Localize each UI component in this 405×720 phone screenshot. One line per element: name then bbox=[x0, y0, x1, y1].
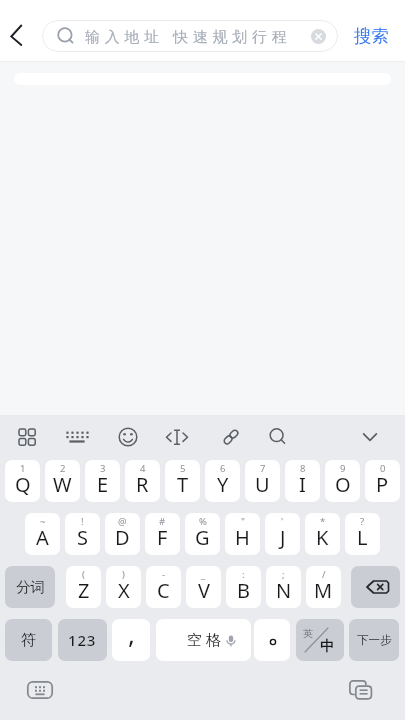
staticText: 5 bbox=[180, 462, 186, 475]
button[interactable]: " bbox=[225, 513, 260, 555]
staticText: Y bbox=[217, 471, 229, 498]
staticText: ; bbox=[282, 568, 285, 581]
button[interactable]: 4 bbox=[125, 460, 160, 502]
staticText: ) bbox=[122, 568, 125, 581]
button[interactable]: ? bbox=[345, 513, 380, 555]
button[interactable]: 分词 bbox=[5, 566, 55, 608]
staticText: G bbox=[195, 524, 210, 551]
button[interactable] bbox=[7, 417, 47, 457]
button[interactable]: , bbox=[112, 619, 150, 661]
button[interactable] bbox=[306, 24, 330, 48]
button[interactable] bbox=[347, 678, 375, 702]
button[interactable]: ( bbox=[66, 566, 101, 608]
button[interactable]: ! bbox=[65, 513, 100, 555]
staticText: 中 bbox=[320, 638, 334, 656]
staticText: K bbox=[316, 524, 329, 551]
staticText: S bbox=[77, 524, 88, 551]
staticText: A bbox=[36, 524, 49, 551]
staticText: X bbox=[118, 577, 130, 604]
staticText: - bbox=[162, 568, 166, 581]
staticText: C bbox=[157, 577, 170, 604]
button[interactable]: 英 bbox=[296, 619, 344, 661]
staticText: 空格 bbox=[185, 631, 223, 650]
button[interactable] bbox=[57, 417, 97, 457]
staticText: ' bbox=[281, 515, 284, 528]
button[interactable]: 输入地址 快速规划行程 bbox=[42, 20, 338, 52]
staticText: 8 bbox=[300, 462, 306, 475]
staticText: Q bbox=[15, 471, 31, 498]
staticText: O bbox=[335, 471, 351, 498]
staticText: / bbox=[322, 568, 326, 581]
staticText: @ bbox=[118, 515, 127, 528]
staticText: 7 bbox=[260, 462, 266, 475]
button[interactable]: ) bbox=[106, 566, 141, 608]
staticText: 下一步 bbox=[357, 633, 392, 647]
button[interactable]: 3 bbox=[85, 460, 120, 502]
button[interactable] bbox=[108, 417, 148, 457]
button[interactable]: _ bbox=[186, 566, 221, 608]
button[interactable]: ' bbox=[265, 513, 300, 555]
button[interactable]: ~ bbox=[25, 513, 60, 555]
button[interactable]: 123 bbox=[58, 619, 107, 661]
button[interactable]: 1 bbox=[5, 460, 40, 502]
button[interactable]: 空格 bbox=[156, 619, 251, 661]
button[interactable] bbox=[258, 417, 298, 457]
staticText: V bbox=[198, 577, 210, 604]
button[interactable] bbox=[26, 678, 54, 702]
staticText: _ bbox=[201, 568, 206, 581]
staticText: ! bbox=[81, 515, 84, 528]
button[interactable]: 搜索 bbox=[338, 10, 405, 61]
staticText: 搜索 bbox=[354, 25, 389, 47]
staticText: L bbox=[357, 524, 368, 551]
staticText: I bbox=[299, 471, 306, 498]
staticText: 4 bbox=[140, 462, 146, 475]
button[interactable]: 2 bbox=[45, 460, 80, 502]
button[interactable]: 5 bbox=[165, 460, 200, 502]
staticText: ( bbox=[82, 568, 85, 581]
staticText: 9 bbox=[340, 462, 346, 475]
button[interactable] bbox=[0, 10, 42, 61]
staticText: % bbox=[199, 515, 207, 528]
button[interactable]: 7 bbox=[245, 460, 280, 502]
staticText: " bbox=[241, 515, 245, 528]
staticText: N bbox=[276, 577, 292, 604]
button[interactable]: % bbox=[185, 513, 220, 555]
button[interactable]: 9 bbox=[325, 460, 360, 502]
staticText: E bbox=[97, 471, 109, 498]
button[interactable] bbox=[211, 417, 251, 457]
staticText: ~ bbox=[40, 515, 46, 528]
button[interactable]: ; bbox=[266, 566, 301, 608]
button[interactable] bbox=[351, 566, 400, 608]
staticText: 1 bbox=[20, 462, 26, 475]
button[interactable] bbox=[254, 619, 290, 661]
staticText: ? bbox=[360, 515, 365, 528]
staticText: * bbox=[320, 515, 326, 528]
staticText: H bbox=[235, 524, 250, 551]
staticText: 3 bbox=[100, 462, 106, 475]
button[interactable]: 下一步 bbox=[349, 619, 399, 661]
staticText: 123 bbox=[68, 630, 97, 650]
staticText: 2 bbox=[60, 462, 66, 475]
button[interactable]: : bbox=[226, 566, 261, 608]
button[interactable]: 6 bbox=[205, 460, 240, 502]
button[interactable]: 8 bbox=[285, 460, 320, 502]
button[interactable] bbox=[350, 417, 390, 457]
button[interactable] bbox=[157, 417, 197, 457]
button[interactable]: 0 bbox=[365, 460, 400, 502]
staticText: 英 bbox=[303, 627, 313, 640]
button[interactable]: - bbox=[146, 566, 181, 608]
button[interactable]: 符 bbox=[5, 619, 52, 661]
staticText: W bbox=[53, 471, 72, 498]
staticText: R bbox=[136, 471, 149, 498]
staticText: F bbox=[157, 524, 168, 551]
button[interactable]: * bbox=[305, 513, 340, 555]
staticText: 输入地址 快速规划行程 bbox=[85, 26, 292, 46]
staticText: , bbox=[128, 619, 135, 651]
staticText: B bbox=[237, 577, 250, 604]
button[interactable]: / bbox=[306, 566, 341, 608]
button[interactable]: # bbox=[145, 513, 180, 555]
staticText: D bbox=[115, 524, 130, 551]
staticText: Z bbox=[78, 577, 90, 604]
staticText: M bbox=[314, 577, 333, 604]
button[interactable]: @ bbox=[105, 513, 140, 555]
